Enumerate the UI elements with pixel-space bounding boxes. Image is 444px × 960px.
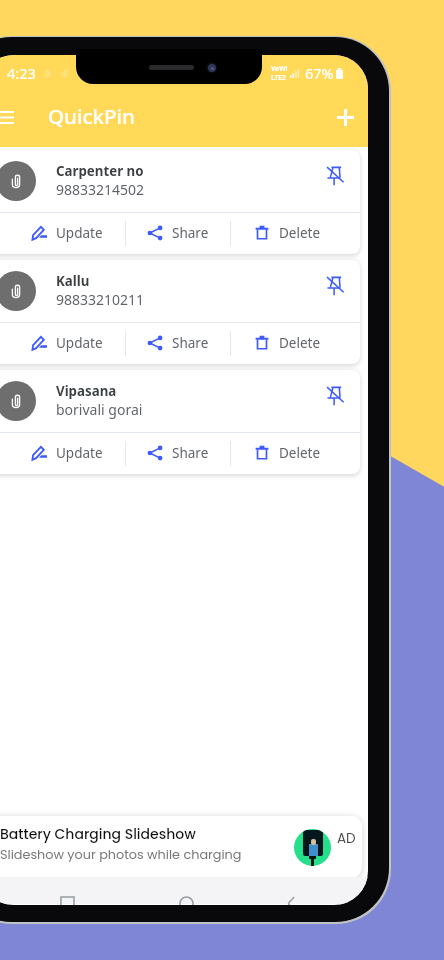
staticText: Delete (279, 334, 321, 352)
staticText: Delete (279, 224, 321, 242)
button[interactable]: Update (22, 323, 112, 363)
staticText: Delete (279, 444, 321, 462)
button[interactable]: Unpin (319, 159, 351, 191)
staticText: borivali gorai (56, 400, 143, 419)
staticText: 4:23 (7, 63, 36, 83)
button[interactable]: Back (280, 892, 302, 905)
button[interactable]: Share (133, 213, 223, 253)
staticText: LTE2 (271, 73, 286, 82)
staticText: 98833214502 (56, 180, 145, 199)
button[interactable]: Home (175, 892, 197, 905)
button[interactable]: Add (327, 99, 363, 135)
button[interactable]: Unpin (319, 269, 351, 301)
staticText: Update (56, 224, 103, 242)
staticText: VoWi (271, 64, 288, 73)
staticText: Vipasana (56, 382, 117, 400)
button[interactable]: Update (22, 213, 112, 253)
staticText: QuickPin (48, 102, 135, 130)
staticText: AD (337, 829, 356, 848)
staticText: Share (172, 224, 209, 242)
button[interactable]: Menu (0, 99, 23, 135)
staticText: Battery Charging Slideshow (0, 824, 196, 844)
button[interactable]: Share (133, 323, 223, 363)
button[interactable]: Delete (242, 213, 332, 253)
button[interactable]: Delete (242, 323, 332, 363)
button[interactable]: Share (133, 433, 223, 473)
button[interactable]: Recents (56, 892, 78, 905)
staticText: Update (56, 334, 103, 352)
button[interactable]: Battery Charging Slideshow (0, 816, 362, 878)
staticText: Update (56, 444, 103, 462)
button[interactable]: Update (22, 433, 112, 473)
staticText: 98833210211 (56, 290, 145, 309)
staticText: Share (172, 444, 209, 462)
staticText: Carpenter no (56, 162, 144, 180)
staticText: Slideshow your photos while charging (0, 846, 242, 864)
button[interactable]: Unpin (319, 379, 351, 411)
staticText: 67% (305, 63, 334, 83)
staticText: Share (172, 334, 209, 352)
button[interactable]: Delete (242, 433, 332, 473)
staticText: Kallu (56, 272, 90, 290)
